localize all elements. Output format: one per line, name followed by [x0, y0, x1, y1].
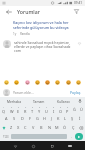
button[interactable]: Backspace: [77, 123, 85, 132]
staticText: C: [24, 125, 27, 130]
staticText: A: [5, 116, 8, 121]
button[interactable]: Back: [4, 7, 13, 16]
staticText: Merhaba: [7, 99, 21, 103]
button[interactable]: Emoji: [75, 79, 82, 86]
button[interactable]: Ç: [69, 123, 77, 132]
button[interactable]: Kullanıcı: [51, 97, 76, 105]
button[interactable]: Recents: [48, 142, 56, 150]
button[interactable]: H: [41, 114, 48, 123]
staticText: Q: [2, 109, 6, 114]
staticText: S: [13, 116, 16, 121]
button[interactable]: B: [37, 123, 45, 132]
button[interactable]: Emoji: [24, 79, 31, 86]
staticText: L: [64, 116, 67, 121]
button[interactable]: 3: [15, 105, 22, 114]
staticText: ?123: [3, 135, 9, 139]
staticText: Y: [38, 109, 41, 114]
button[interactable]: Back: [11, 142, 19, 150]
staticText: Kaçıncı kez izliyorum ve hala her seferi…: [13, 20, 79, 30]
staticText: 7: [46, 106, 48, 109]
button[interactable]: N: [45, 123, 53, 132]
button[interactable]: V: [29, 123, 37, 132]
staticText: Ç: [72, 125, 75, 130]
button[interactable]: D: [18, 114, 26, 123]
button[interactable]: M: [53, 123, 61, 132]
staticText: M: [55, 125, 59, 130]
staticText: 5: [32, 106, 34, 109]
button[interactable]: ?123: [2, 133, 10, 140]
staticText: T: [31, 109, 34, 114]
button[interactable]: Emoji: [3, 79, 10, 86]
button[interactable]: Ü: [78, 105, 85, 114]
button[interactable]: G: [34, 114, 41, 123]
button[interactable]: 2: [8, 105, 15, 114]
staticText: D: [21, 116, 24, 121]
button[interactable]: Paylaş: [69, 90, 82, 95]
staticText: Tamam: [33, 99, 45, 103]
button[interactable]: Ğ: [71, 105, 78, 114]
staticText: Ş: [71, 116, 74, 121]
button[interactable]: C: [22, 123, 29, 132]
staticText: 1y: [13, 32, 17, 36]
button[interactable]: F: [26, 114, 34, 123]
button[interactable]: Home: [29, 142, 37, 150]
button[interactable]: 0: [64, 105, 71, 114]
button[interactable]: 7: [43, 105, 50, 114]
button[interactable]: 5: [29, 105, 36, 114]
button[interactable]: İ: [76, 114, 83, 123]
button[interactable]: 6: [36, 105, 43, 114]
button[interactable]: Shift: [0, 123, 8, 132]
button[interactable]: A: [2, 114, 10, 123]
button[interactable]: Voice input: [76, 97, 83, 105]
staticText: 0: [67, 106, 69, 109]
button[interactable]: Merhaba: [2, 97, 26, 105]
staticText: 09:41: [74, 1, 83, 5]
staticText: N: [48, 125, 51, 130]
staticText: 9: [60, 106, 62, 109]
button[interactable]: Send: [75, 133, 83, 140]
button[interactable]: S: [10, 114, 18, 123]
button[interactable]: 4: [22, 105, 29, 114]
button[interactable]: Like: [76, 40, 82, 46]
button[interactable]: Yorum ekle...: [13, 90, 69, 95]
button[interactable]: Emoji: [54, 79, 61, 86]
staticText: Ğ: [73, 107, 76, 112]
staticText: H: [43, 116, 46, 121]
staticText: Yanıtla: [20, 32, 30, 36]
button[interactable]: J: [48, 114, 55, 123]
staticText: P: [66, 109, 69, 114]
staticText: Ö: [63, 125, 67, 130]
staticText: E: [17, 109, 20, 114]
button[interactable]: 9: [57, 105, 64, 114]
button[interactable]: sahinde Savsalsad mıyok hepimize, ellerd…: [0, 37, 85, 54]
button[interactable]: Z: [8, 123, 15, 132]
button[interactable]: .: [68, 133, 74, 140]
staticText: .: [71, 134, 72, 139]
button[interactable]: Emoji: [13, 79, 20, 86]
button[interactable]: Filter: [72, 7, 81, 16]
staticText: J: [51, 116, 53, 121]
button[interactable]: Ş: [69, 114, 76, 123]
staticText: X: [17, 125, 20, 130]
staticText: I: [53, 109, 55, 114]
staticText: F: [29, 116, 32, 121]
button[interactable]: Ö: [61, 123, 69, 132]
button[interactable]: Keyboard: [66, 142, 74, 150]
button[interactable]: Emoji: [34, 79, 41, 86]
button[interactable]: Emoji: [44, 79, 51, 86]
button[interactable]: 1: [0, 105, 8, 114]
staticText: 1: [3, 106, 5, 109]
staticText: G: [36, 116, 39, 121]
button[interactable]: L: [62, 114, 69, 123]
staticText: W: [10, 109, 14, 114]
staticText: Yorum ekle...: [13, 90, 34, 95]
staticText: Kullanıcı: [57, 99, 70, 103]
button[interactable]: Emoji: [65, 79, 72, 86]
button[interactable]: Kaçıncı kez izliyorum ve hala her seferi…: [0, 18, 85, 37]
button[interactable]: 8: [50, 105, 57, 114]
button[interactable]: Tamam: [26, 97, 51, 105]
button[interactable]: K: [55, 114, 62, 123]
button[interactable]: X: [15, 123, 22, 132]
staticText: Paylaş: [70, 90, 81, 95]
